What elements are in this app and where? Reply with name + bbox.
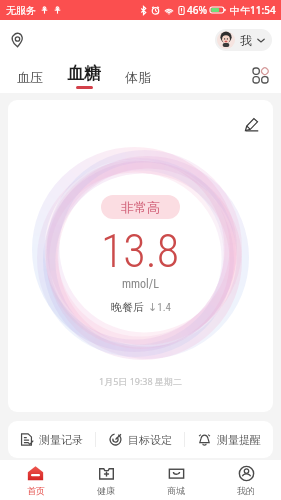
button[interactable]: 血糖 <box>67 63 101 89</box>
staticText: 中午11:54 <box>230 3 276 17</box>
staticText: ↓1.4 <box>148 301 171 314</box>
button[interactable]: 测量记录 <box>8 421 95 458</box>
staticText: 13.8 <box>101 224 180 278</box>
button[interactable]: More options <box>248 63 272 87</box>
staticText: 目标设定 <box>128 433 172 447</box>
button[interactable]: 我的 <box>211 460 281 500</box>
staticText: 首页 <box>27 485 45 496</box>
staticText: 血压 <box>17 69 43 85</box>
staticText: 46% <box>187 3 207 17</box>
staticText: 体脂 <box>125 69 151 85</box>
button[interactable]: Edit <box>241 114 261 134</box>
button[interactable]: 血压 <box>12 63 48 85</box>
staticText: 非常高 <box>121 199 160 215</box>
staticText: 测量提醒 <box>217 433 261 447</box>
staticText: 健康 <box>97 485 115 496</box>
staticText: 测量记录 <box>39 433 83 447</box>
staticText: 晚餐后 <box>111 300 144 314</box>
button[interactable]: 首页 <box>0 460 71 500</box>
button[interactable]: 体脂 <box>120 63 156 85</box>
button[interactable]: 健康 <box>71 460 141 500</box>
staticText: 商城 <box>167 485 185 496</box>
button[interactable]: 商城 <box>141 460 211 500</box>
staticText: mmol/L <box>122 277 160 291</box>
staticText: 我 <box>240 33 252 48</box>
button[interactable]: 测量提醒 <box>185 421 273 458</box>
button[interactable]: 目标设定 <box>96 421 184 458</box>
staticText: 1月5日 19:38 星期二 <box>99 375 182 387</box>
staticText: 我的 <box>237 485 255 496</box>
staticText: 无服务 <box>6 4 36 17</box>
button[interactable]: Location <box>6 29 28 51</box>
button[interactable]: 我 <box>215 29 272 51</box>
staticText: 血糖 <box>67 63 101 84</box>
